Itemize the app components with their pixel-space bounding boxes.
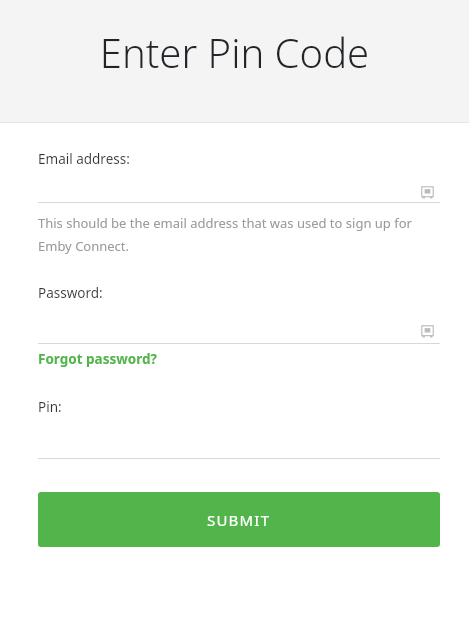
button[interactable]: Autofill email address <box>38 168 440 202</box>
staticText: Pin: <box>38 398 62 416</box>
button[interactable]: Forgot password? <box>38 350 157 368</box>
staticText: Password: <box>38 284 103 302</box>
staticText: Enter Pin Code <box>0 25 469 79</box>
staticText: This should be the email address that wa… <box>38 214 412 255</box>
button[interactable]: Autofill password <box>421 325 434 338</box>
button[interactable]: Autofill password <box>38 302 440 343</box>
staticText: Email address: <box>38 150 130 168</box>
staticText: Forgot password? <box>38 350 157 368</box>
button[interactable]: Autofill email address <box>421 186 434 199</box>
button[interactable]: SUBMIT <box>38 492 440 547</box>
staticText: SUBMIT <box>207 510 271 530</box>
